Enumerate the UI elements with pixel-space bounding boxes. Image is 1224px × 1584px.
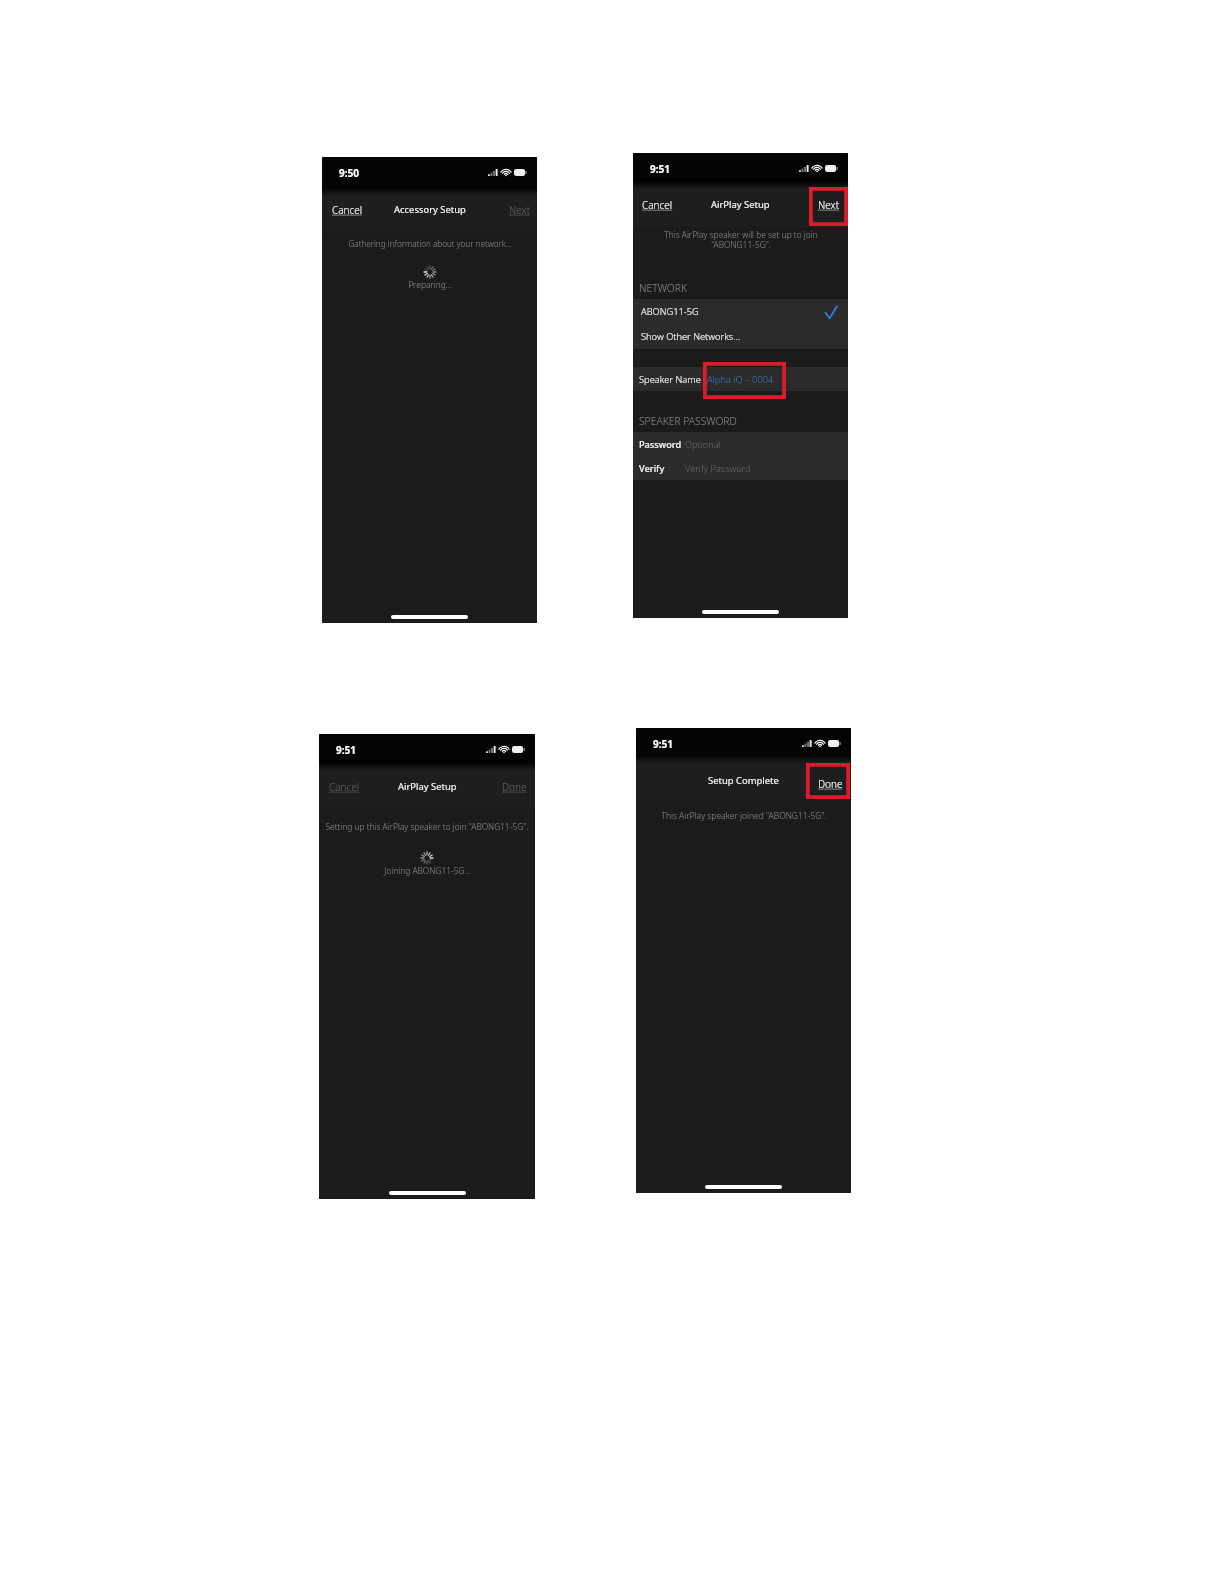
button[interactable]: Verify (633, 456, 848, 480)
other: Selected network (825, 305, 838, 320)
staticText: AirPlay Setup (398, 780, 457, 793)
staticText: Cancel (642, 198, 673, 212)
staticText: ABONG11-5G (641, 305, 699, 318)
staticText: Cancel (329, 780, 360, 794)
staticText: This AirPlay speaker joined "ABONG11-5G"… (661, 810, 827, 822)
staticText: Next (818, 198, 840, 212)
staticText: 9:51 (650, 162, 670, 176)
staticText: 9:51 (336, 743, 356, 757)
button[interactable]: Cancel (637, 192, 678, 218)
staticText: Setup Complete (708, 774, 779, 787)
button[interactable]: Next (813, 192, 845, 218)
staticText: Alpha iQ – 0004 (707, 373, 774, 386)
staticText: SPEAKER PASSWORD (639, 414, 737, 428)
button[interactable]: ABONG11-5G (633, 299, 848, 324)
button[interactable]: Done (497, 774, 532, 800)
staticText: 9:51 (653, 737, 673, 751)
staticText: NETWORK (639, 281, 687, 295)
button[interactable]: Cancel (327, 197, 368, 223)
button[interactable]: Show Other Networks... (633, 324, 848, 349)
staticText: Joining ABONG11-5G... (384, 865, 471, 876)
staticText: AirPlay Setup (711, 198, 770, 211)
staticText: Gathering information about your network… (348, 238, 512, 249)
staticText: Next (509, 203, 531, 217)
staticText: This AirPlay speaker will be set up to j… (664, 229, 818, 251)
button[interactable]: Password (633, 432, 848, 456)
staticText: Verify Password (685, 462, 751, 475)
staticText: Optional (685, 438, 721, 451)
staticText: 9:50 (339, 166, 359, 180)
staticText: Accessory Setup (394, 203, 466, 216)
staticText: Setting up this AirPlay speaker to join … (325, 821, 529, 832)
button[interactable]: Speaker Name (633, 367, 848, 391)
staticText: Done (818, 777, 843, 791)
staticText: Preparing... (408, 279, 452, 290)
staticText: Speaker Name (639, 373, 701, 386)
button[interactable]: Cancel (324, 774, 365, 800)
staticText: Password (639, 438, 682, 451)
staticText: Done (502, 780, 527, 794)
button[interactable]: Next (504, 197, 536, 223)
button[interactable]: Done (813, 771, 848, 797)
staticText: Verify (639, 462, 665, 475)
staticText: Cancel (332, 203, 363, 217)
staticText: Show Other Networks... (641, 330, 740, 343)
